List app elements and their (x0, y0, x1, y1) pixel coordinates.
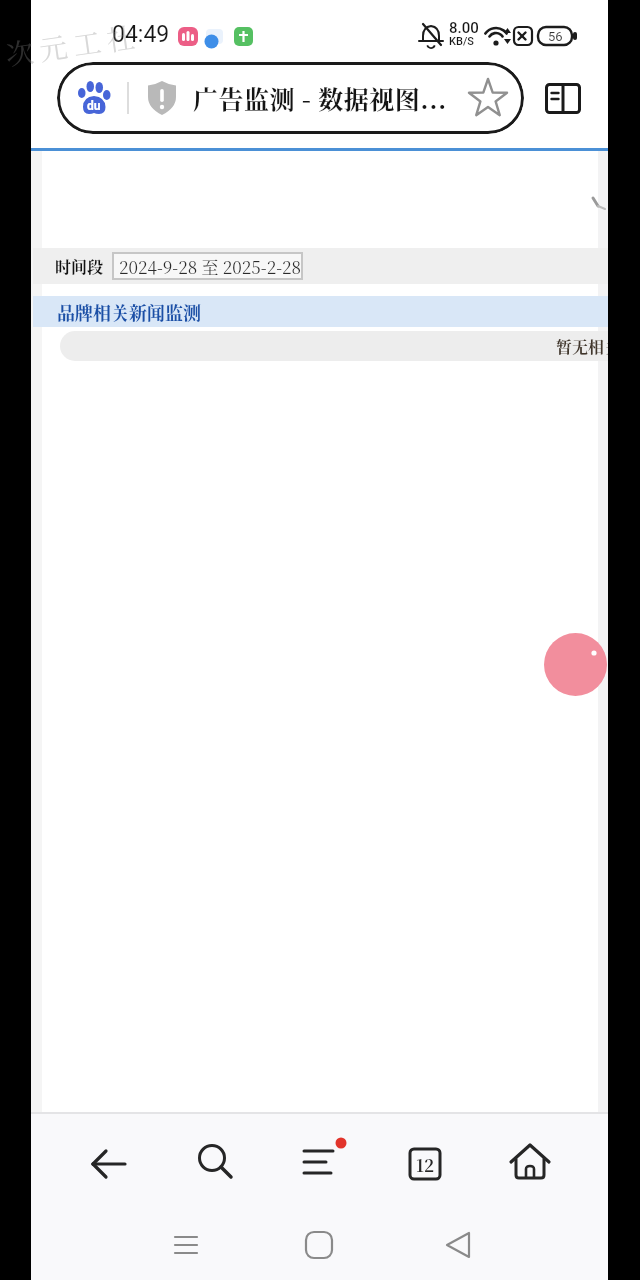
button[interactable] (428, 1215, 488, 1275)
button[interactable] (495, 1129, 565, 1199)
button[interactable] (179, 1129, 249, 1199)
button[interactable] (73, 1129, 143, 1199)
button[interactable] (460, 70, 516, 126)
staticText: 12 (416, 1152, 435, 1176)
button[interactable] (536, 74, 590, 122)
button[interactable]: 12 (390, 1129, 460, 1199)
staticText: 56 (548, 29, 563, 44)
button[interactable] (544, 633, 607, 696)
button[interactable]: du (57, 62, 524, 134)
button[interactable] (156, 1215, 216, 1275)
staticText: 04:49 (112, 21, 170, 48)
button[interactable]: 2024-9-28 至 2025-2-28 (112, 252, 303, 280)
staticText: 8.00 (449, 19, 479, 37)
staticText: 时间段 (55, 255, 104, 278)
staticText: 2024-9-28 至 2025-2-28 (119, 254, 302, 278)
staticText: KB/S (449, 35, 474, 48)
button[interactable] (289, 1215, 349, 1275)
staticText: 品牌相关新闻监测 (57, 299, 201, 325)
staticText: 次元工社 (3, 15, 144, 73)
staticText: du (87, 99, 101, 113)
staticText: 暂无相关新闻 (556, 335, 640, 358)
staticText: 广告监测 - 数据视图... (193, 80, 447, 116)
button[interactable] (283, 1129, 353, 1199)
